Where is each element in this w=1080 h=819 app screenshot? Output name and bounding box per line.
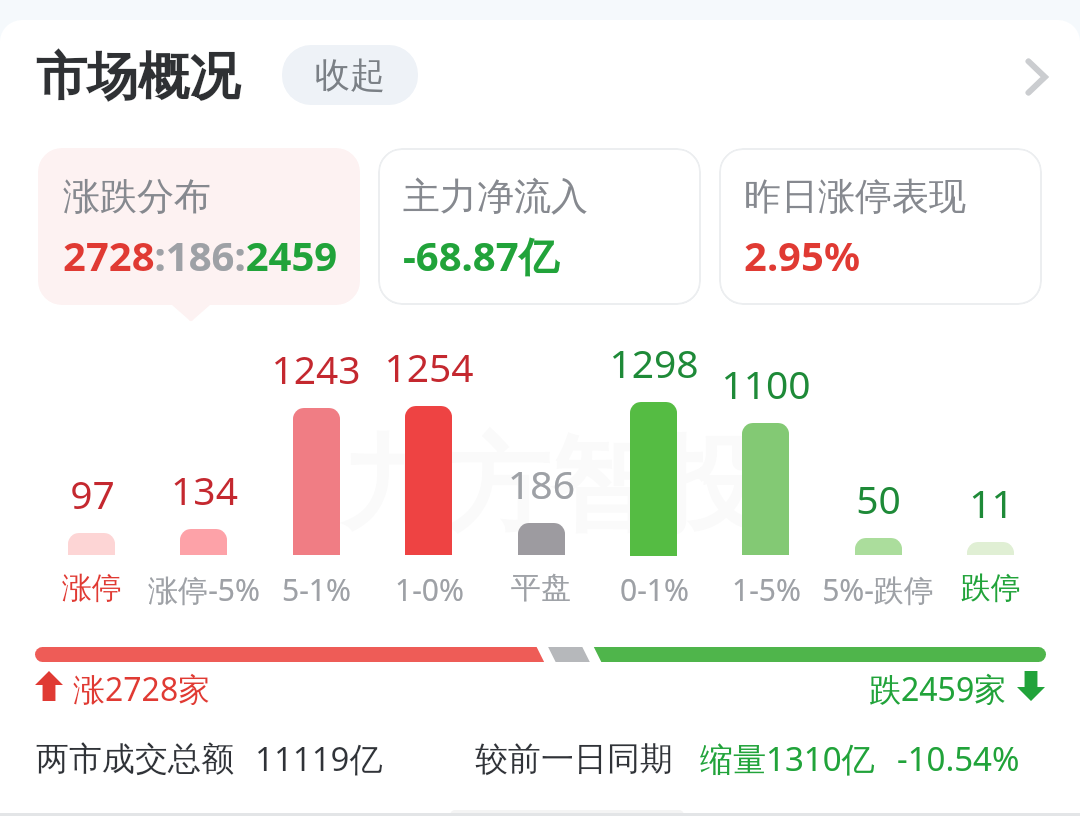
staticText: -68.87亿 [403, 228, 559, 283]
button[interactable]: 昨日涨停表现 [719, 148, 1042, 305]
staticText: 1254 [384, 340, 474, 390]
button[interactable]: 收起 [282, 45, 418, 105]
staticText: 2728:186:2459 [63, 228, 338, 282]
staticText: 平盘 [511, 569, 571, 607]
staticText: 市场概况 [36, 45, 240, 109]
staticText: 跌停 [961, 569, 1021, 607]
staticText: 11119亿 [255, 736, 383, 781]
button[interactable]: 主力净流入 [378, 148, 701, 305]
button[interactable]: 涨跌分布 [38, 148, 360, 305]
button[interactable]: 涨2728家 [0, 667, 1080, 705]
staticText: 1-5% [732, 569, 801, 610]
staticText: 5-1% [282, 569, 351, 610]
staticText: 涨2728家 [73, 667, 211, 705]
staticText: 1-0% [395, 569, 464, 610]
staticText: 0-1% [620, 569, 689, 610]
staticText: 两市成交总额 [36, 738, 234, 780]
staticText: 涨停 [62, 569, 122, 607]
staticText: 134 [171, 463, 238, 513]
staticText: 50 [856, 472, 901, 522]
staticText: 1298 [609, 336, 699, 386]
staticText: 2.95% [744, 228, 860, 282]
staticText: 97 [70, 467, 115, 517]
staticText: -10.54% [897, 736, 1020, 781]
staticText: 九方智投 [340, 420, 760, 552]
staticText: 1100 [721, 357, 811, 407]
button[interactable]: 展开更多 [1005, 46, 1067, 108]
staticText: 跌2459家 [869, 667, 1007, 705]
staticText: 涨停-5% [148, 569, 260, 610]
button[interactable]: 市场概况 [36, 45, 240, 109]
staticText: 涨跌分布 [63, 173, 211, 220]
staticText: 5%-跌停 [822, 569, 934, 610]
staticText: 昨日涨停表现 [744, 173, 966, 220]
staticText: 主力净流入 [403, 173, 588, 220]
staticText: 186 [508, 457, 575, 507]
staticText: 收起 [315, 53, 385, 97]
staticText: 11 [969, 476, 1014, 526]
staticText: 缩量1310亿 [700, 736, 875, 781]
staticText: 较前一日同期 [475, 738, 673, 780]
staticText: 1243 [271, 342, 361, 392]
